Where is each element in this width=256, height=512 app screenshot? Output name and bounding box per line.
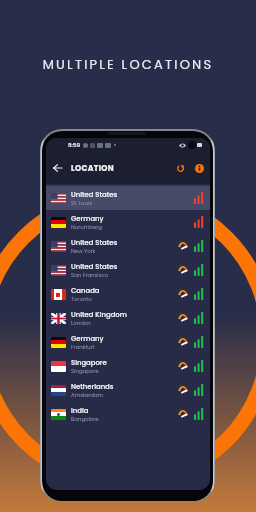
staticText: Singapore [71,367,99,375]
staticText: United States [71,262,118,272]
button[interactable]: Singapore [46,354,210,378]
button[interactable]: India [46,402,210,426]
button[interactable]: Refresh [172,160,188,176]
staticText: St. Louis [71,199,93,207]
staticText: Germany [71,214,104,224]
button[interactable]: Netherlands [46,378,210,402]
staticText: Canada [71,286,100,296]
staticText: LOCATION [71,163,114,174]
staticText: United Kingdom [71,310,127,320]
staticText: Amsterdam [71,391,104,399]
staticText: Netherlands [71,382,114,392]
staticText: Toronto [71,295,92,303]
button[interactable]: United States [46,234,210,258]
staticText: London [71,319,91,327]
button[interactable]: Canada [46,282,210,306]
staticText: India [71,406,89,416]
staticText: San Fransisco [71,271,109,279]
button[interactable]: Info [191,160,207,176]
staticText: Germany [71,334,104,344]
button[interactable]: Back [48,159,66,177]
staticText: Nurumberg [71,223,102,231]
staticText: Singapore [71,358,107,368]
staticText: United States [71,238,118,248]
button[interactable]: United States [46,258,210,282]
button[interactable]: United Kingdom [46,306,210,330]
staticText: 8:59 [68,141,81,149]
button[interactable]: Germany [46,330,210,354]
button[interactable]: United States [46,186,210,210]
staticText: MULTIPLE LOCATIONS [0,55,256,73]
button[interactable]: Germany [46,210,210,234]
staticText: Bangolore [71,415,99,423]
staticText: Frankfurt [71,343,95,351]
staticText: United States [71,190,118,200]
staticText: New York [71,247,96,255]
